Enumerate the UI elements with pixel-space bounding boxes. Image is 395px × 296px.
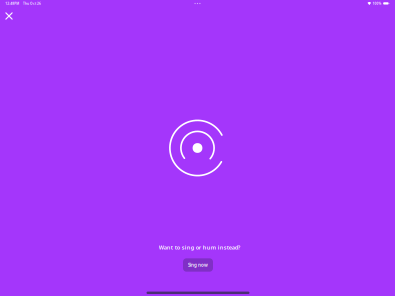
staticText: Sing now: [188, 262, 208, 268]
staticText: 12:48PM: [5, 1, 19, 6]
button[interactable]: Close: [0, 5, 20, 27]
button[interactable]: Sing now: [183, 258, 213, 272]
staticText: Want to sing or hum instead?: [159, 244, 241, 251]
staticText: Thu Oct 26: [23, 1, 41, 6]
staticText: 100%: [372, 1, 381, 6]
